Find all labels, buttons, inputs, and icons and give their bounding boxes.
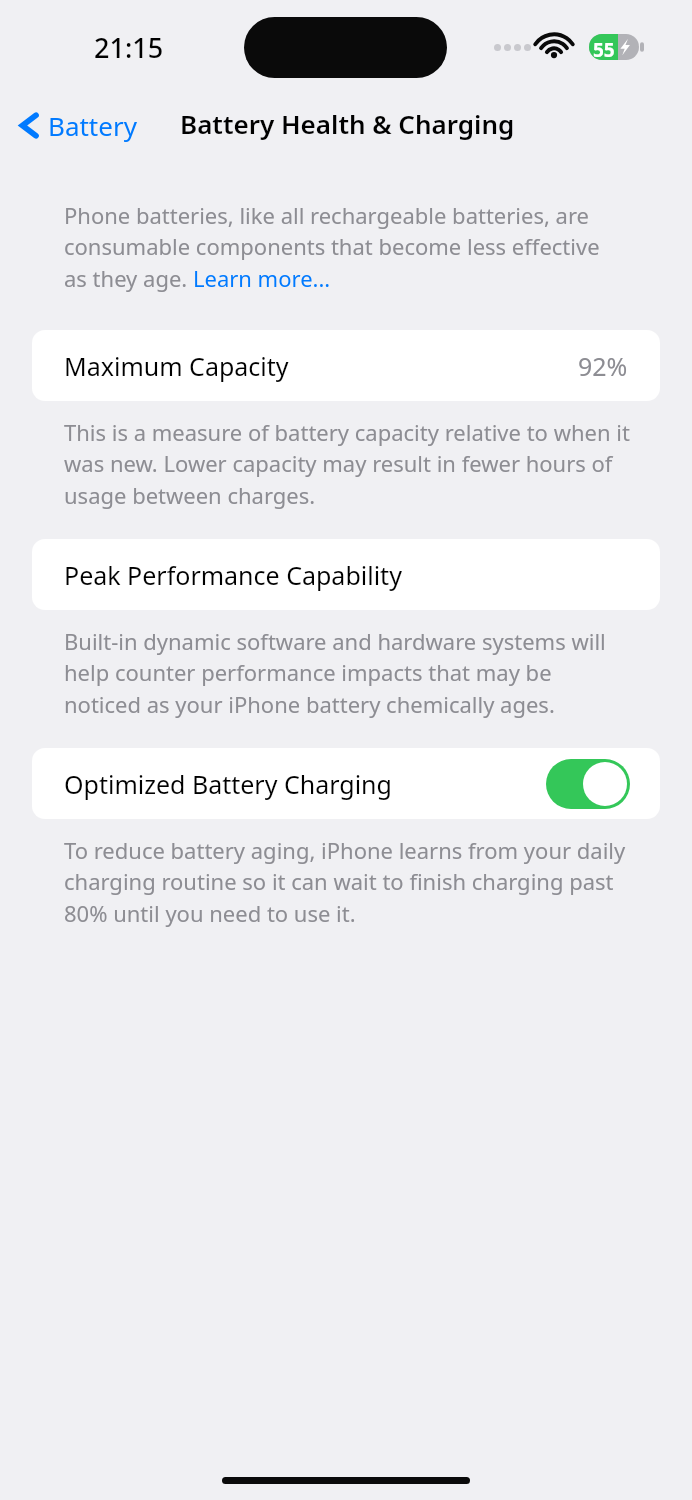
staticText: Optimized Battery Charging xyxy=(64,767,392,801)
staticText: Built-in dynamic software and hardware s… xyxy=(64,626,634,720)
staticText: 92% xyxy=(578,349,628,383)
staticText: 21:15 xyxy=(94,29,164,66)
staticText: Battery Health & Charging xyxy=(180,106,515,141)
button[interactable]: Optimized Battery Charging xyxy=(32,748,660,819)
staticText: This is a measure of battery capacity re… xyxy=(64,417,634,511)
staticText: Battery xyxy=(48,108,137,143)
button[interactable]: Maximum Capacity xyxy=(32,330,660,401)
button[interactable]: Peak Performance Capability xyxy=(32,539,660,610)
staticText: Maximum Capacity xyxy=(64,349,289,383)
staticText: To reduce battery aging, iPhone learns f… xyxy=(64,835,634,929)
staticText: Peak Performance Capability xyxy=(64,558,402,592)
button[interactable]: Battery xyxy=(14,103,143,148)
staticText: 55 xyxy=(593,37,615,63)
button[interactable]: Optimized Battery Charging xyxy=(546,759,630,809)
staticText: Phone batteries, like all rechargeable b… xyxy=(64,200,614,294)
